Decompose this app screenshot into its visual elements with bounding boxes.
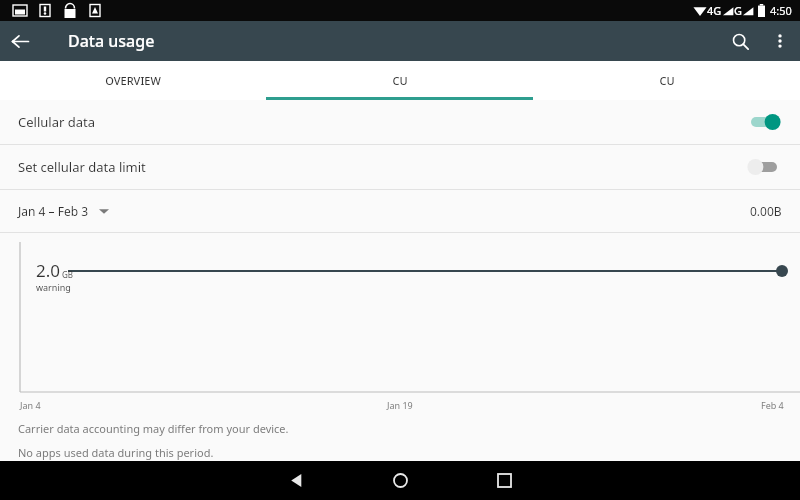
staticText: Data usage bbox=[68, 30, 155, 52]
staticText: Jan 4 bbox=[20, 399, 41, 411]
button[interactable]: Home bbox=[364, 461, 436, 500]
staticText: 2.0 bbox=[36, 259, 61, 282]
staticText: GB bbox=[62, 269, 74, 280]
button[interactable]: Back bbox=[260, 461, 332, 500]
staticText: No apps used data during this period. bbox=[18, 445, 214, 460]
staticText: Jan 19 bbox=[387, 399, 413, 411]
button[interactable]: CU bbox=[266, 61, 533, 100]
button[interactable]: Recent apps bbox=[468, 461, 540, 500]
button[interactable]: Set cellular data limit bbox=[0, 145, 800, 189]
button[interactable]: Cellular data bbox=[0, 100, 800, 144]
button[interactable]: OVERVIEW bbox=[0, 61, 266, 100]
staticText: Jan 4 – Feb 3 bbox=[18, 203, 89, 219]
staticText: Carrier data accounting may differ from … bbox=[18, 421, 289, 436]
staticText: G bbox=[734, 3, 742, 18]
staticText: 4G bbox=[707, 3, 722, 18]
button[interactable]: More options bbox=[760, 21, 800, 61]
staticText: 4:50 bbox=[770, 3, 792, 18]
staticText: CU bbox=[392, 73, 408, 88]
staticText: warning bbox=[36, 281, 71, 293]
button[interactable]: Search bbox=[720, 21, 760, 61]
staticText: OVERVIEW bbox=[105, 73, 161, 88]
button[interactable]: Back bbox=[0, 21, 40, 61]
staticText: CU bbox=[659, 73, 675, 88]
staticText: Set cellular data limit bbox=[18, 158, 146, 176]
staticText: Feb 4 bbox=[761, 399, 784, 411]
staticText: Cellular data bbox=[18, 113, 95, 131]
button[interactable]: Jan 4 – Feb 3 bbox=[0, 190, 800, 232]
staticText: 0.00B bbox=[750, 203, 782, 219]
button[interactable]: CU bbox=[533, 61, 800, 100]
